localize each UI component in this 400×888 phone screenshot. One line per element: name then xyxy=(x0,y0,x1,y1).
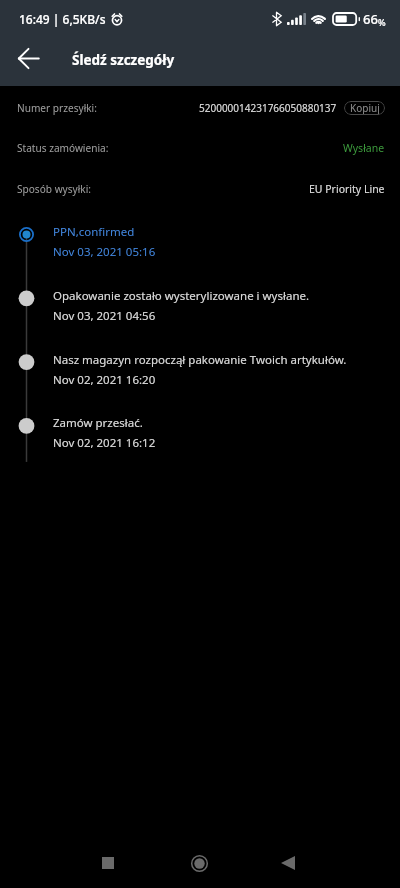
staticText: Nov 03, 2021 05:16 xyxy=(53,244,156,260)
button[interactable]: PPN,confirmed xyxy=(53,216,400,280)
staticText: 520000014231766050880137 xyxy=(199,101,337,115)
staticText: Śledź szczegóły xyxy=(72,51,175,69)
staticText: Nov 02, 2021 16:12 xyxy=(53,435,156,451)
staticText: Zamów przesłać. xyxy=(53,415,143,431)
staticText: Kopiuj xyxy=(350,101,380,115)
button[interactable]: Back xyxy=(264,839,312,887)
staticText: PPN,confirmed xyxy=(53,224,135,240)
staticText: Status zamówienia: xyxy=(17,141,109,155)
staticText: EU Priority Line xyxy=(309,182,385,196)
staticText: 66 xyxy=(363,10,378,28)
button[interactable]: Nasz magazyn rozpoczął pakowanie Twoich … xyxy=(53,344,400,408)
staticText: Opakowanie zostało wysterylizowane i wys… xyxy=(53,288,310,304)
button[interactable]: Opakowanie zostało wysterylizowane i wys… xyxy=(53,280,400,344)
staticText: Sposób wysyłki: xyxy=(17,182,91,196)
staticText: Nasz magazyn rozpoczął pakowanie Twoich … xyxy=(53,352,347,368)
button[interactable]: Recent apps xyxy=(84,839,132,887)
staticText: 16:49 | 6,5KB/s xyxy=(19,11,106,27)
button[interactable]: Zamów przesłać. xyxy=(53,407,400,471)
staticText: % xyxy=(378,16,386,28)
staticText: Wysłane xyxy=(343,141,385,155)
button[interactable]: Back xyxy=(6,36,50,80)
staticText: Nov 02, 2021 16:20 xyxy=(53,372,156,388)
button[interactable]: Home xyxy=(175,839,223,887)
button[interactable]: Kopiuj xyxy=(344,101,385,115)
staticText: Numer przesyłki: xyxy=(17,101,97,115)
staticText: Nov 03, 2021 04:56 xyxy=(53,308,156,324)
